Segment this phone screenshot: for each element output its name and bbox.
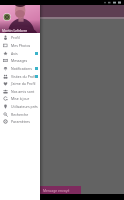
button[interactable]: Mes Photos: [0, 41, 40, 49]
staticText: Nos amis sont amis: [11, 89, 40, 94]
button[interactable]: Utilisateurs près de vous: [0, 102, 40, 110]
staticText: Paramètres: [11, 119, 30, 124]
button[interactable]: Notifications: [0, 64, 40, 72]
button[interactable]: Message envoyé: [10, 186, 81, 194]
button[interactable]: Profil: [0, 33, 40, 41]
staticText: J'aime du Profil: [11, 81, 36, 86]
staticText: Avis: [11, 51, 18, 56]
staticText: Recherche: [11, 112, 29, 117]
staticText: Notifications: [11, 66, 32, 71]
button[interactable]: Visites du Profil: [0, 72, 40, 80]
button[interactable]: Messages: [0, 56, 40, 64]
staticText: Profil: [11, 35, 20, 40]
button[interactable]: Profile photo: [3, 13, 11, 21]
staticText: Mise à jour: [11, 96, 30, 101]
button[interactable]: Avis: [0, 49, 40, 57]
staticText: Messages: [11, 58, 28, 63]
button[interactable]: Profile photo: [0, 0, 40, 33]
button[interactable]: Recherche: [0, 110, 40, 118]
button[interactable]: Paramètres: [0, 117, 40, 125]
staticText: Message envoyé: [43, 188, 70, 193]
staticText: Martin Lefebvre: [2, 28, 28, 32]
staticText: Visites du Profil: [11, 74, 37, 79]
button[interactable]: Mise à jour: [0, 94, 40, 102]
staticText: Utilisateurs près de vous: [11, 104, 40, 109]
button[interactable]: J'aime du Profil: [0, 79, 40, 87]
staticText: Mes Photos: [11, 43, 31, 48]
button[interactable]: Nos amis sont amis: [0, 87, 40, 95]
